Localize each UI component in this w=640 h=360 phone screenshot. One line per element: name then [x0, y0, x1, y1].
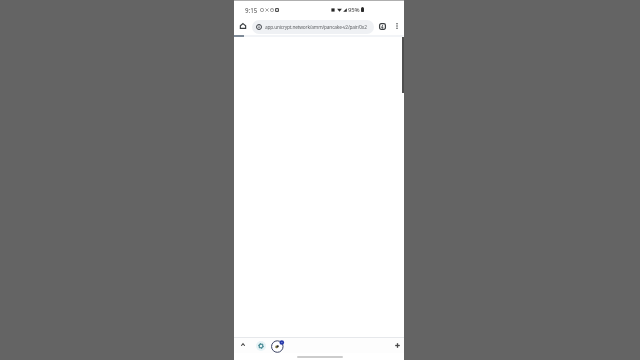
button[interactable]: Expand — [237, 338, 249, 350]
staticText: 95% — [348, 6, 360, 14]
button[interactable]: Settings — [256, 341, 266, 351]
button[interactable]: More options — [390, 19, 404, 33]
staticText: 9:15 — [245, 6, 258, 14]
staticText: app.unicrypt.network/amm/pancake-v2/pair… — [265, 24, 367, 31]
button[interactable]: Switch tabs — [375, 19, 389, 33]
button[interactable]: Account — [271, 339, 285, 353]
button[interactable]: Add — [391, 339, 403, 351]
staticText: 4 — [381, 24, 384, 30]
button[interactable]: app.unicrypt.network/amm/pancake-v2/pair… — [252, 20, 374, 34]
button[interactable]: Home — [236, 19, 250, 33]
